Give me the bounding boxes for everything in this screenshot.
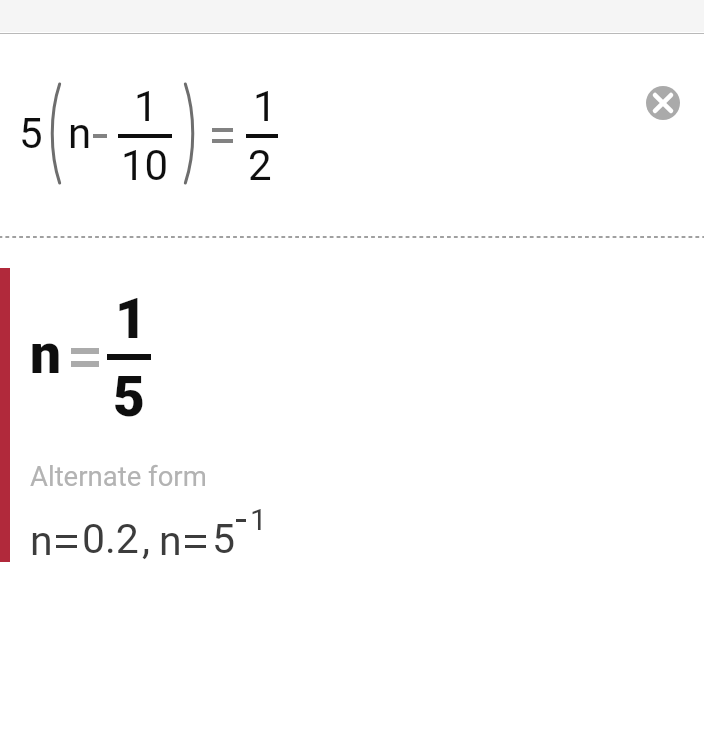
staticText: 1 [115,287,147,351]
staticText: 1 [250,502,267,537]
button[interactable]: Solution n equals 1/5 [0,268,704,562]
staticText: 5 [113,365,145,429]
button[interactable]: Close [646,86,680,120]
button[interactable]: Equation 5 times n minus 1/10 equals 1/2 [0,34,704,235]
staticText: 0.2 [82,515,139,563]
staticText: , [142,515,151,563]
staticText: 1 [253,82,277,131]
staticText: n [159,517,182,565]
staticText: 5 [212,515,236,563]
staticText: 10 [121,141,169,190]
staticText: 5 [19,109,43,158]
staticText: Alternate form [30,460,207,492]
staticText: 1 [134,82,158,131]
staticText: n [30,322,62,386]
staticText: n [68,109,92,158]
staticText: n [30,517,53,565]
staticText: 2 [248,141,272,190]
